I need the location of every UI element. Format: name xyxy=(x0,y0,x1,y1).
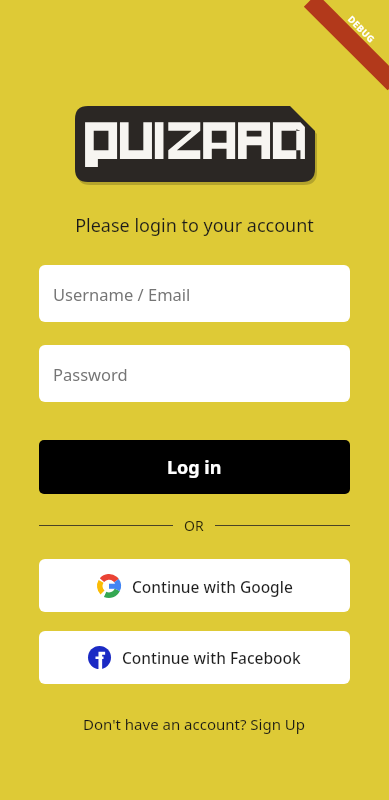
staticText: Please login to your account xyxy=(75,213,314,238)
staticText: DEBUG xyxy=(346,13,378,45)
staticText: Don't have an account? Sign Up xyxy=(83,714,306,734)
staticText: Continue with Facebook xyxy=(122,647,301,668)
button[interactable]: Password xyxy=(39,345,350,402)
staticText: Password xyxy=(53,363,128,385)
button[interactable]: Log in xyxy=(39,440,350,494)
staticText: Continue with Google xyxy=(132,576,293,597)
staticText: OR xyxy=(184,516,204,535)
button[interactable]: Don't have an account? Sign Up xyxy=(79,710,310,738)
staticText: Username / Email xyxy=(53,283,191,305)
other: Debug build banner xyxy=(315,0,389,74)
staticText: Log in xyxy=(167,455,222,480)
button[interactable]: Continue with Google xyxy=(39,559,350,612)
button[interactable]: Username / Email xyxy=(39,265,350,322)
button[interactable]: Continue with Facebook xyxy=(39,631,350,684)
